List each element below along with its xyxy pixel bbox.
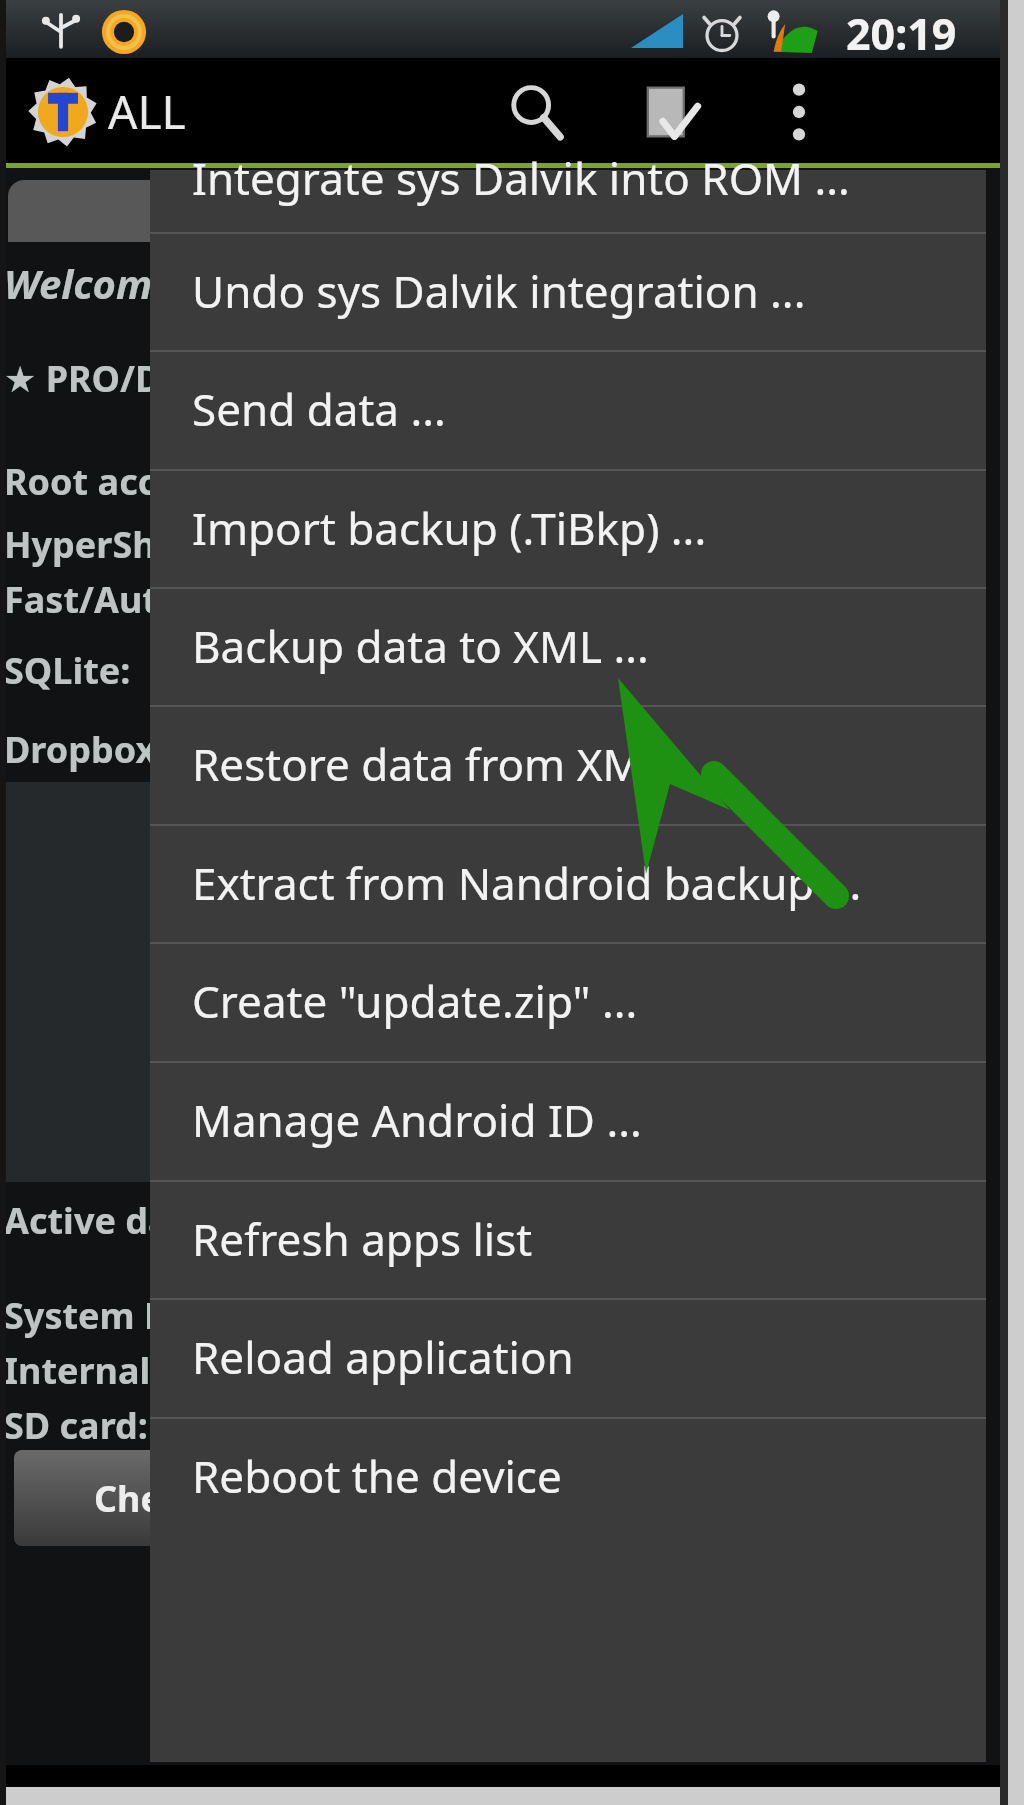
button[interactable]: Reload application	[150, 1298, 986, 1416]
staticText: Active data: 231 apps	[4, 1196, 392, 1245]
button[interactable]: Restore data from XML ...	[150, 705, 986, 823]
button[interactable]: Send data ...	[150, 350, 986, 468]
staticText: Box: not linked	[4, 780, 282, 829]
staticText: 20:19	[846, 4, 957, 62]
staticText: SQLite: OK	[4, 646, 202, 695]
button[interactable]: Refresh apps list	[150, 1180, 986, 1298]
staticText: Create "update.zip" ...	[192, 971, 638, 1031]
staticText: Integrate sys Dalvik into ROM ...	[192, 148, 850, 208]
staticText: Send data ...	[192, 379, 446, 439]
button[interactable]: Backup data to XML ...	[150, 587, 986, 705]
staticText: External storage: writable	[4, 940, 470, 989]
staticText: Backup data to XML ...	[192, 616, 649, 676]
staticText: Welcome to Titanium Backup !	[4, 256, 576, 310]
staticText: System ROM: 0 B	[4, 1291, 313, 1340]
staticText: Extract from Nandroid backup ...	[192, 853, 862, 913]
button[interactable]: Reboot the device	[150, 1417, 986, 1535]
staticText: Fast/Auto-nandroid: OK	[4, 575, 427, 624]
staticText: Internal: 3.4 GB free	[4, 1346, 372, 1395]
button[interactable]: Create "update.zip" ...	[150, 942, 986, 1060]
button[interactable]: More options	[744, 58, 854, 165]
button[interactable]: Undo sys Dalvik integration ...	[150, 232, 986, 350]
button[interactable]: Extract from Nandroid backup ...	[150, 824, 986, 942]
staticText: Undo sys Dalvik integration ...	[192, 261, 806, 321]
staticText: ★ PRO/DONATE key not found	[4, 354, 542, 403]
staticText: SD card: 9.1 GB free	[4, 1401, 359, 1450]
staticText: Reload application	[192, 1327, 574, 1387]
staticText: Refresh apps list	[192, 1209, 533, 1269]
staticText: ALL	[108, 80, 186, 143]
button[interactable]: ALL	[26, 58, 186, 165]
staticText: Import backup (.TiBkp) ...	[192, 498, 707, 558]
staticText: Backup directory: /sdcard	[4, 995, 464, 1044]
button[interactable]: Overview	[8, 180, 568, 242]
staticText: Overview	[208, 188, 369, 234]
staticText: Root access: OK	[4, 457, 296, 506]
staticText: Google Drive: not linked	[4, 835, 437, 884]
staticText: Check app updates	[94, 1474, 435, 1523]
button[interactable]: Batch actions	[612, 58, 730, 165]
button[interactable]: Integrate sys Dalvik into ROM ...	[150, 119, 986, 237]
staticText: Restore data from XML ...	[192, 734, 713, 794]
button[interactable]: Check app updates	[14, 1450, 514, 1546]
staticText: Manage Android ID ...	[192, 1090, 642, 1150]
button[interactable]: Manage Android ID ...	[150, 1061, 986, 1179]
staticText: Reboot the device	[192, 1446, 562, 1506]
staticText: HyperShell: enabled	[4, 520, 372, 569]
staticText: Dropbox: not linked	[4, 725, 368, 774]
button[interactable]: Search	[478, 58, 596, 165]
button[interactable]: Import backup (.TiBkp) ...	[150, 469, 986, 587]
